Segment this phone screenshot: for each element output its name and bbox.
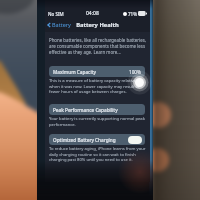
staticText: Phone batteries, like all rechargeable b… <box>49 37 146 55</box>
button[interactable]: Optimized Battery Charging <box>128 136 142 144</box>
staticText: Battery Health <box>45 21 150 29</box>
staticText: To reduce battery aging, iPhone learns f… <box>49 146 146 162</box>
staticText: Maximum Capacity <box>53 69 96 75</box>
staticText: Your battery is currently supporting nor… <box>49 116 146 127</box>
staticText: Peak Performance Capability <box>53 107 118 113</box>
button[interactable]: Optimized Battery Charging <box>49 134 145 145</box>
button[interactable]: Battery <box>46 20 72 29</box>
button[interactable]: Peak Performance Capability <box>49 104 145 115</box>
staticText: 04:08 <box>86 10 99 17</box>
staticText: 71% <box>128 11 137 17</box>
staticText: No SIM <box>48 11 64 17</box>
staticText: Battery <box>52 21 71 28</box>
staticText: This is a measure of battery capacity re… <box>49 78 146 94</box>
staticText: Optimized Battery Charging <box>53 137 116 143</box>
button[interactable]: Maximum Capacity <box>49 66 145 77</box>
staticText: 100% <box>129 69 141 75</box>
